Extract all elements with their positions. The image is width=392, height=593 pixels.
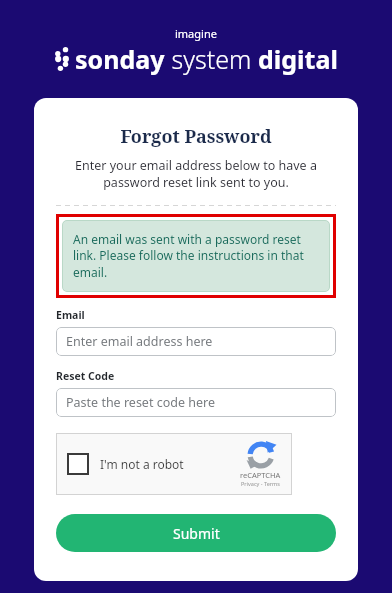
staticText: digital xyxy=(258,42,338,76)
staticText: Privacy - Terms xyxy=(241,480,280,487)
staticText: Submit xyxy=(173,524,220,543)
button[interactable]: Paste the reset code here xyxy=(56,388,336,417)
button[interactable]: Submit xyxy=(56,514,336,552)
staticText: Enter email address here xyxy=(66,333,213,350)
staticText: Enter your email address below to have a… xyxy=(56,157,336,191)
button[interactable]: I'm not a robot checkbox xyxy=(56,433,292,495)
staticText: reCAPTCHA xyxy=(240,470,281,480)
staticText: Email xyxy=(56,308,85,322)
other: I'm not a robot checkbox xyxy=(67,453,89,475)
staticText: Forgot Password xyxy=(56,124,336,149)
staticText: sonday xyxy=(75,42,165,76)
staticText: imagine xyxy=(175,26,217,41)
staticText: An email was sent with a password reset … xyxy=(73,231,319,281)
staticText: Reset Code xyxy=(56,369,115,383)
button[interactable]: Enter email address here xyxy=(56,327,336,356)
staticText: Paste the reset code here xyxy=(66,394,215,411)
staticText: I'm not a robot xyxy=(100,456,184,472)
staticText: system xyxy=(165,42,258,76)
